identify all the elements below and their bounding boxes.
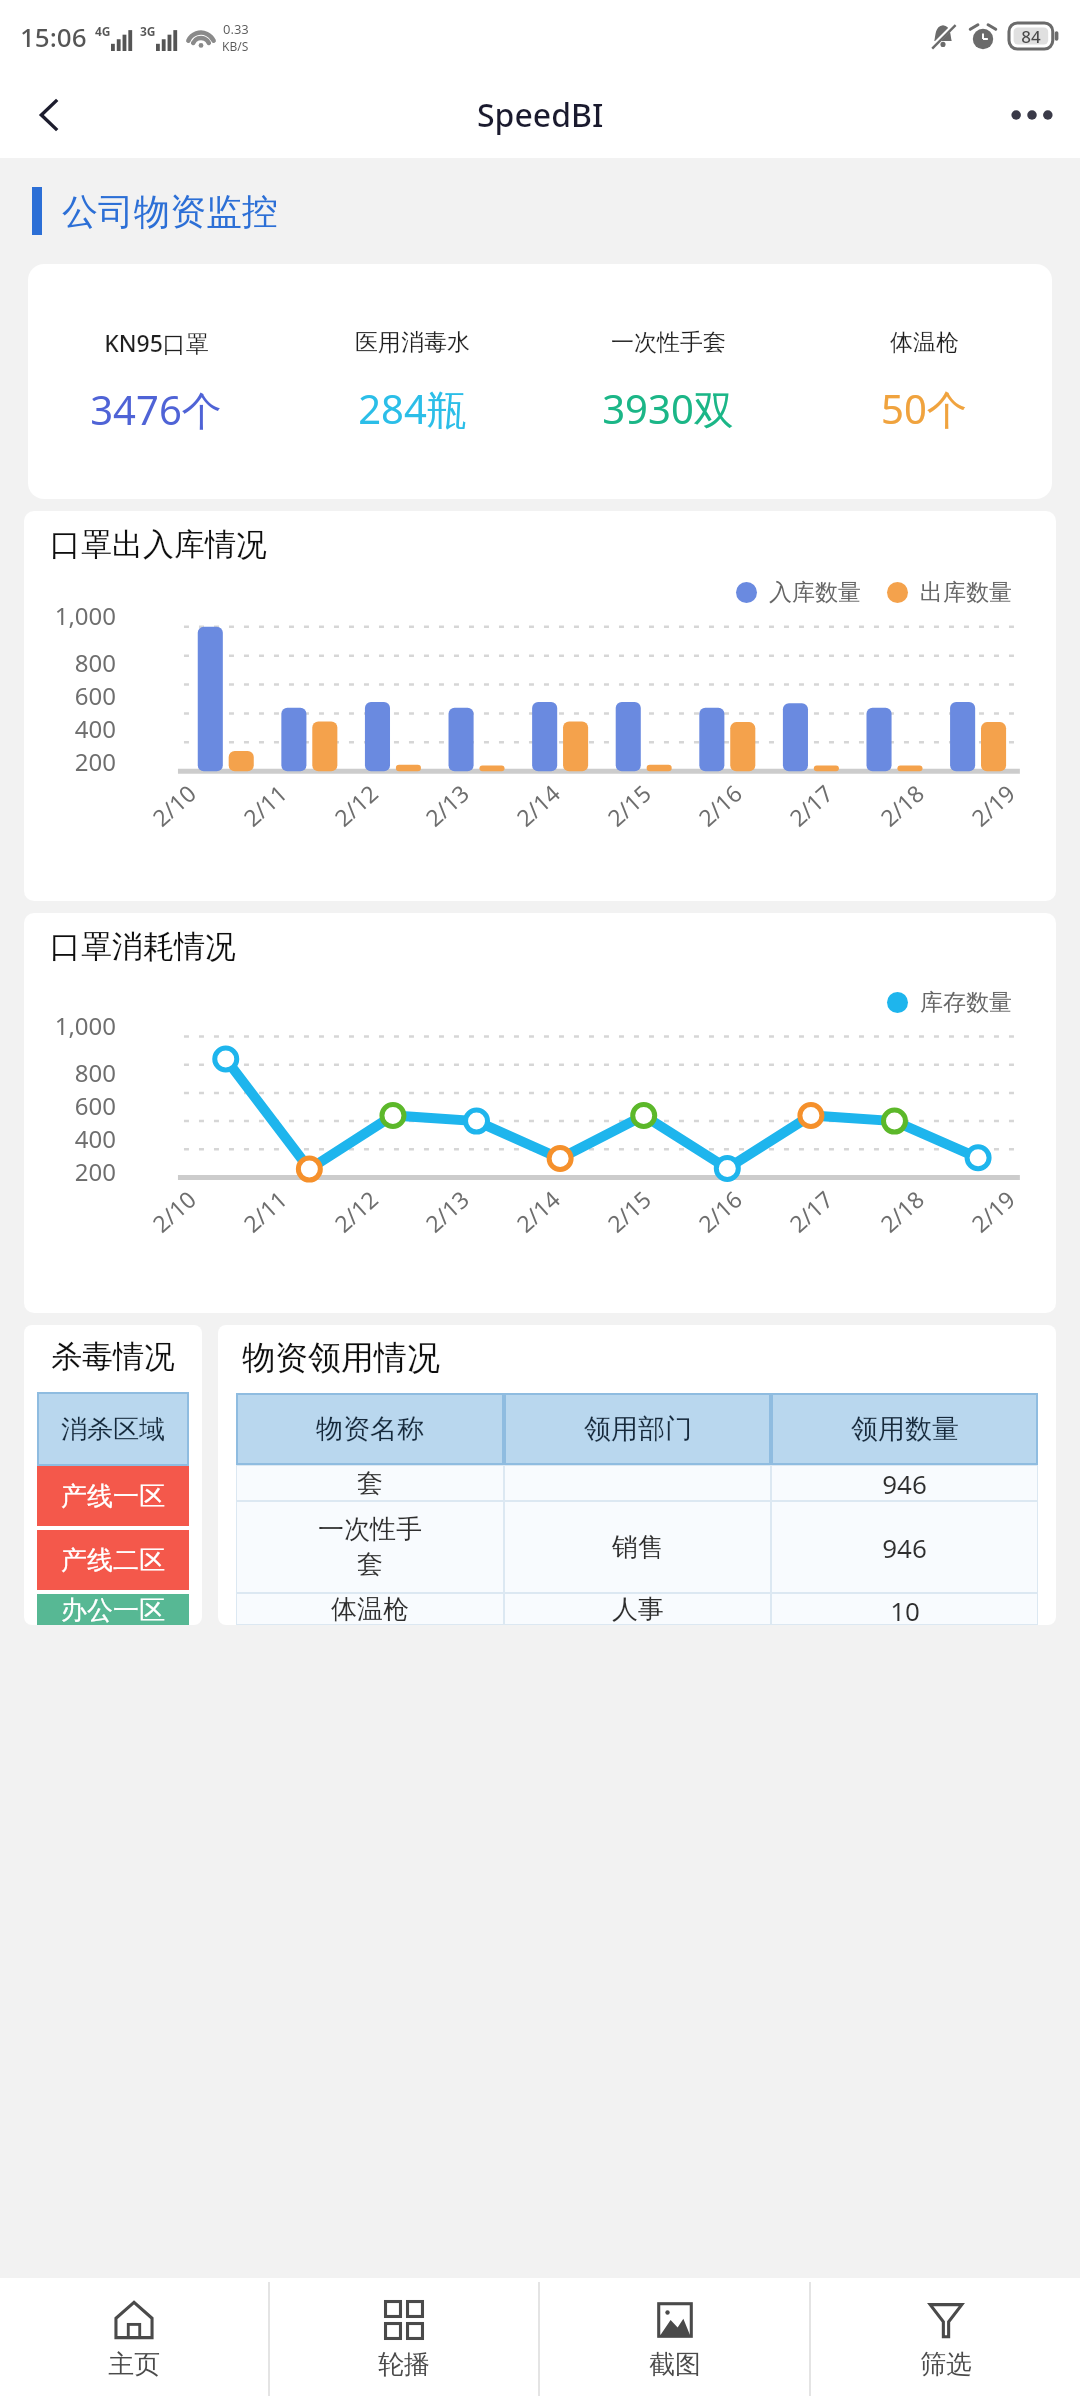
staticText: KB/S bbox=[222, 38, 249, 54]
button[interactable]: Back bbox=[20, 85, 80, 145]
button[interactable]: 物资领用情况 bbox=[218, 1325, 1056, 1625]
staticText: 领用部门 bbox=[584, 1412, 692, 1446]
staticText: 一次性手套 bbox=[611, 328, 726, 357]
staticText: 2/16 bbox=[691, 1183, 748, 1239]
staticText: 筛选 bbox=[920, 2348, 972, 2381]
button[interactable]: 口罩出入库情况 bbox=[24, 511, 1056, 901]
button[interactable]: 轮播 bbox=[270, 2278, 538, 2400]
staticText: 15:06 bbox=[20, 19, 87, 54]
button[interactable]: More options bbox=[1000, 83, 1064, 147]
staticText: 2/11 bbox=[236, 777, 293, 833]
staticText: 体温枪 bbox=[890, 328, 959, 357]
staticText: 2/17 bbox=[782, 1183, 839, 1239]
staticText: 600 bbox=[74, 1089, 116, 1122]
staticText: 产线一区 bbox=[61, 1480, 165, 1513]
staticText: 400 bbox=[74, 1122, 116, 1155]
button[interactable]: 筛选 bbox=[811, 2278, 1080, 2400]
staticText: 2/15 bbox=[600, 777, 657, 833]
staticText: 主页 bbox=[108, 2348, 160, 2381]
staticText: 2/19 bbox=[964, 777, 1021, 833]
staticText: 200 bbox=[74, 745, 116, 778]
staticText: 3G bbox=[140, 23, 156, 39]
staticText: 2/19 bbox=[964, 1183, 1021, 1239]
staticText: 3476个 bbox=[90, 382, 222, 437]
staticText: 销售 bbox=[612, 1531, 664, 1564]
staticText: 2/18 bbox=[873, 777, 930, 833]
staticText: 2/10 bbox=[145, 777, 202, 833]
staticText: SpeedBI bbox=[477, 93, 604, 137]
staticText: 杀毒情况 bbox=[24, 1337, 202, 1376]
staticText: 284瓶 bbox=[358, 381, 467, 436]
staticText: 1,000 bbox=[54, 599, 116, 632]
staticText: 体温枪 bbox=[331, 1593, 409, 1625]
staticText: 200 bbox=[74, 1155, 116, 1188]
button[interactable]: KN95口罩 bbox=[28, 264, 1052, 499]
button[interactable]: 截图 bbox=[540, 2278, 809, 2400]
staticText: 946 bbox=[882, 1530, 927, 1565]
staticText: 2/18 bbox=[873, 1183, 930, 1239]
staticText: 轮播 bbox=[378, 2348, 430, 2381]
staticText: 1,000 bbox=[54, 1009, 116, 1042]
staticText: 800 bbox=[74, 1056, 116, 1089]
other: Silent mode bbox=[928, 21, 958, 51]
staticText: 公司物资监控 bbox=[62, 189, 278, 234]
staticText: 物资领用情况 bbox=[242, 1337, 440, 1379]
staticText: 消杀区域 bbox=[61, 1413, 165, 1446]
staticText: 3930双 bbox=[602, 381, 734, 436]
staticText: 4G bbox=[95, 23, 111, 39]
staticText: 2/10 bbox=[145, 1183, 202, 1239]
staticText: 一次性手 套 bbox=[318, 1513, 422, 1581]
staticText: 2/14 bbox=[509, 1183, 566, 1239]
staticText: 2/11 bbox=[236, 1183, 293, 1239]
button[interactable]: 主页 bbox=[0, 2278, 268, 2400]
staticText: 套 bbox=[357, 1467, 383, 1500]
staticText: 2/12 bbox=[327, 1183, 384, 1239]
button[interactable]: 杀毒情况 bbox=[24, 1325, 202, 1625]
staticText: 2/15 bbox=[600, 1183, 657, 1239]
staticText: 人事 bbox=[612, 1593, 664, 1625]
staticText: 2/13 bbox=[418, 777, 475, 833]
staticText: 2/13 bbox=[418, 1183, 475, 1239]
staticText: 10 bbox=[890, 1593, 920, 1625]
staticText: 800 bbox=[74, 646, 116, 679]
staticText: 医用消毒水 bbox=[355, 328, 470, 357]
staticText: 出库数量 bbox=[920, 578, 1012, 607]
staticText: 领用数量 bbox=[851, 1412, 959, 1446]
staticText: 50个 bbox=[881, 381, 967, 436]
staticText: 2/12 bbox=[327, 777, 384, 833]
staticText: KN95口罩 bbox=[104, 327, 209, 358]
staticText: 口罩出入库情况 bbox=[50, 525, 267, 564]
button[interactable]: 口罩消耗情况 bbox=[24, 913, 1056, 1313]
staticText: 400 bbox=[74, 712, 116, 745]
staticText: 2/16 bbox=[691, 777, 748, 833]
staticText: 产线二区 bbox=[61, 1544, 165, 1577]
staticText: 库存数量 bbox=[920, 988, 1012, 1017]
staticText: 84 bbox=[1008, 25, 1054, 48]
staticText: 600 bbox=[74, 679, 116, 712]
staticText: 办公一区 bbox=[61, 1594, 165, 1625]
staticText: 物资名称 bbox=[316, 1412, 424, 1446]
other: Alarm bbox=[968, 21, 998, 51]
staticText: 入库数量 bbox=[769, 578, 861, 607]
staticText: 0.33 bbox=[223, 20, 249, 38]
staticText: 口罩消耗情况 bbox=[50, 927, 236, 966]
staticText: 946 bbox=[882, 1466, 927, 1501]
staticText: 截图 bbox=[649, 2348, 701, 2381]
staticText: 2/14 bbox=[509, 777, 566, 833]
staticText: 2/17 bbox=[782, 777, 839, 833]
